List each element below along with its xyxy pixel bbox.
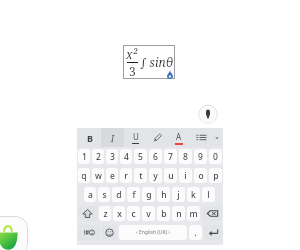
button[interactable]: 0 xyxy=(209,149,222,164)
button[interactable]: . xyxy=(189,225,202,240)
button[interactable]: o xyxy=(194,168,207,183)
button[interactable]: t xyxy=(134,168,147,183)
staticText: g xyxy=(146,189,152,201)
staticText: o xyxy=(198,170,204,182)
button[interactable]: 9 xyxy=(194,149,207,164)
staticText: 8 xyxy=(183,151,188,163)
staticText: u xyxy=(168,170,174,182)
staticText: 3 xyxy=(110,151,115,163)
staticText: q xyxy=(81,170,87,182)
button[interactable]: e xyxy=(106,168,118,183)
staticText: n xyxy=(176,208,182,220)
staticText: 1 xyxy=(82,151,87,163)
button[interactable]: Text colour xyxy=(168,128,190,147)
button[interactable]: h xyxy=(157,187,170,202)
staticText: s xyxy=(102,189,107,201)
staticText: 6 xyxy=(153,151,158,163)
button[interactable]: Enter xyxy=(204,225,222,240)
button[interactable]: I xyxy=(101,128,124,147)
button[interactable]: b xyxy=(157,206,170,221)
button[interactable]: r xyxy=(120,168,132,183)
button[interactable]: Symbols xyxy=(78,225,100,240)
staticText: U xyxy=(133,131,139,142)
button[interactable]: Lists xyxy=(190,128,212,147)
button[interactable]: Backspace xyxy=(202,206,222,221)
staticText: i xyxy=(184,170,187,182)
button[interactable]: a xyxy=(84,187,96,202)
button[interactable]: 4 xyxy=(120,149,132,164)
button[interactable]: Shopping app xyxy=(0,216,28,250)
staticText: v xyxy=(146,208,151,220)
button[interactable]: j xyxy=(172,187,185,202)
button[interactable]: u xyxy=(164,168,177,183)
button[interactable]: n xyxy=(172,206,185,221)
button[interactable]: Emoji xyxy=(102,225,117,240)
staticText: p xyxy=(213,170,219,182)
staticText: 5 xyxy=(138,151,143,163)
button[interactable]: Highlight xyxy=(146,128,168,147)
staticText: . xyxy=(194,227,197,239)
staticText: 2 xyxy=(96,151,101,163)
button[interactable]: y xyxy=(149,168,162,183)
staticText: m xyxy=(189,208,198,220)
button[interactable]: d xyxy=(112,187,125,202)
staticText: e xyxy=(110,170,115,182)
button[interactable]: f xyxy=(127,187,140,202)
button[interactable]: k xyxy=(187,187,200,202)
button[interactable]: q xyxy=(78,168,90,183)
button[interactable]: U xyxy=(124,128,146,147)
staticText: k xyxy=(191,189,196,201)
staticText: d xyxy=(116,189,122,201)
button[interactable]: c xyxy=(127,206,140,221)
button[interactable]: g xyxy=(142,187,155,202)
button[interactable]: i xyxy=(179,168,192,183)
button[interactable]: p xyxy=(209,168,222,183)
button[interactable]: Voice input xyxy=(198,104,218,124)
staticText: ‹ English (UK) › xyxy=(136,229,170,236)
staticText: 0 xyxy=(213,151,218,163)
staticText: B xyxy=(87,132,93,144)
staticText: b xyxy=(161,208,167,220)
button[interactable]: 6 xyxy=(149,149,162,164)
button[interactable]: v xyxy=(142,206,155,221)
button[interactable]: 5 xyxy=(134,149,147,164)
button[interactable]: z xyxy=(99,206,111,221)
staticText: f xyxy=(132,189,136,201)
staticText: 3 xyxy=(129,63,136,79)
button[interactable]: 3 xyxy=(106,149,118,164)
button[interactable]: ‹ English (UK) › xyxy=(119,225,187,240)
staticText: 9 xyxy=(198,151,203,163)
staticText: c xyxy=(131,208,136,220)
staticText: j xyxy=(177,189,180,201)
staticText: 4 xyxy=(124,151,129,163)
button[interactable]: B xyxy=(78,128,101,147)
staticText: ∫ sinθ xyxy=(140,54,174,70)
staticText: a xyxy=(88,189,93,201)
staticText: A xyxy=(176,131,182,142)
staticText: w xyxy=(95,170,102,182)
staticText: l xyxy=(207,189,210,201)
button[interactable]: l xyxy=(202,187,215,202)
staticText: z xyxy=(103,208,108,220)
staticText: x xyxy=(117,208,122,220)
button[interactable]: m xyxy=(187,206,200,221)
staticText: x² xyxy=(126,46,138,62)
staticText: y xyxy=(153,170,158,182)
button[interactable]: 1 xyxy=(78,149,90,164)
button[interactable]: x xyxy=(113,206,125,221)
button[interactable]: s xyxy=(98,187,110,202)
staticText: h xyxy=(161,189,167,201)
staticText: t xyxy=(139,170,143,182)
button[interactable]: 7 xyxy=(164,149,177,164)
button[interactable]: More formatting xyxy=(212,128,221,147)
staticText: r xyxy=(124,170,128,182)
staticText: I xyxy=(111,132,114,144)
button[interactable]: 2 xyxy=(92,149,104,164)
staticText: 7 xyxy=(168,151,173,163)
button[interactable]: 8 xyxy=(179,149,192,164)
button[interactable]: w xyxy=(92,168,104,183)
button[interactable]: Shift xyxy=(78,206,97,221)
